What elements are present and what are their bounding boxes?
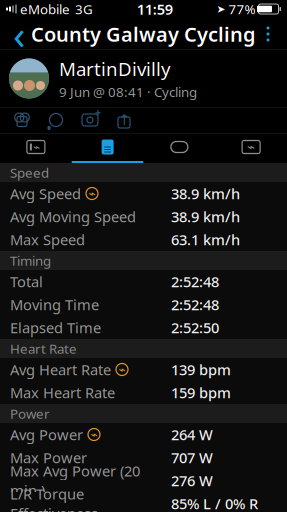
staticText: eMobile (20, 0, 70, 18)
button[interactable]: Max Heart Rate (0, 381, 287, 404)
button[interactable]: Comment (39, 107, 73, 133)
staticText: 2:52:50 (171, 318, 219, 337)
staticText: Avg Heart Rate (10, 360, 111, 379)
button[interactable]: L/R Torque Effectiveness (0, 492, 287, 512)
staticText: ⌁ (88, 187, 95, 200)
staticText: Avg Speed (10, 184, 81, 203)
staticText: L/R Torque Effectiveness (10, 484, 98, 512)
staticText: Timing (10, 252, 51, 269)
staticText: 9 Jun @ 08:41 · Cycling (59, 83, 197, 101)
staticText: Max Heart Rate (10, 383, 115, 402)
staticText: ⌁ (33, 140, 40, 154)
button[interactable]: Max Speed (0, 228, 287, 251)
staticText: MartinDivilly (59, 56, 171, 81)
staticText: + (95, 105, 101, 119)
button[interactable]: Avg Power (0, 423, 287, 446)
staticText: ↑ (118, 112, 130, 128)
button[interactable]: Total (0, 270, 287, 293)
button[interactable]: Map (0, 133, 72, 161)
staticText: 85% L / 0% R (171, 494, 258, 512)
staticText: Power (10, 405, 50, 422)
staticText: 276 W (171, 471, 213, 490)
staticText: ⌁ (118, 363, 125, 376)
button[interactable]: Charts (215, 133, 287, 161)
button[interactable]: More options (251, 18, 285, 50)
button[interactable]: Back (2, 18, 36, 50)
staticText: Moving Time (10, 295, 99, 314)
staticText: ⌁ (247, 139, 255, 154)
staticText: 159 bpm (171, 383, 231, 402)
staticText: 707 W (171, 448, 213, 467)
button[interactable]: Avg Speed (0, 182, 287, 205)
button[interactable]: Max Avg Power (20 min.) (0, 469, 287, 492)
staticText: Heart Rate (10, 340, 77, 357)
staticText: 38.9 km/h (171, 207, 240, 226)
staticText: Total (10, 272, 43, 291)
button[interactable]: Elapsed Time (0, 316, 287, 339)
staticText: 3G (75, 0, 93, 18)
staticText: 2:52:48 (171, 295, 219, 314)
button[interactable]: Like (5, 107, 39, 133)
staticText: ⌁ (90, 428, 97, 441)
staticText: 63.1 km/h (171, 230, 240, 249)
staticText: Elapsed Time (10, 318, 101, 337)
staticText: 264 W (171, 425, 213, 444)
staticText: Speed (10, 164, 49, 181)
staticText: ‹ (13, 7, 25, 60)
button[interactable]: Avg Moving Speed (0, 205, 287, 228)
button[interactable]: Add photo (73, 107, 107, 133)
staticText: County Galway Cycling (31, 21, 256, 47)
staticText: Max Power (10, 448, 87, 467)
button[interactable]: Share (107, 107, 141, 133)
staticText: Avg Moving Speed (10, 207, 136, 226)
staticText: 139 bpm (171, 360, 231, 379)
staticText: 2:52:48 (171, 272, 219, 291)
staticText: 38.9 km/h (171, 184, 240, 203)
button[interactable]: Max Power (0, 446, 287, 469)
button[interactable]: Avg Heart Rate (0, 358, 287, 381)
button[interactable]: MartinDivilly (0, 50, 287, 107)
staticText: 11:59 (137, 0, 173, 19)
staticText: Max Avg Power (20 min.) (10, 461, 140, 500)
button[interactable]: Details (72, 133, 144, 161)
button[interactable]: Moving Time (0, 293, 287, 316)
staticText: 77% (228, 0, 255, 18)
staticText: ➤ (216, 3, 225, 15)
staticText: Max Speed (10, 230, 85, 249)
button[interactable]: Laps (143, 133, 215, 161)
staticText: Avg Power (10, 425, 83, 444)
